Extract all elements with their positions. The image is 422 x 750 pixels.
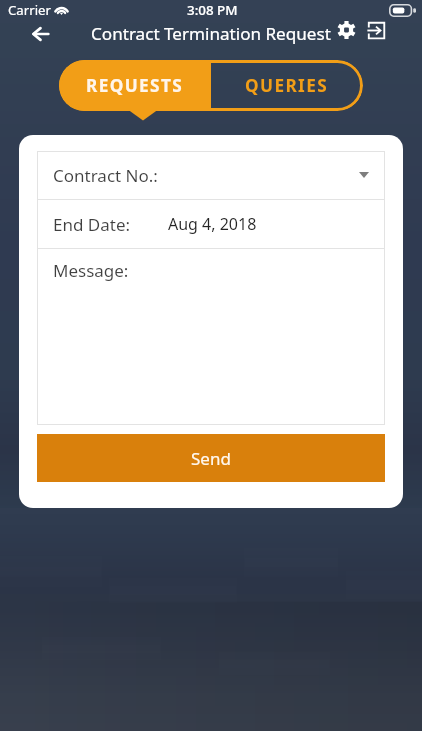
staticText: REQUESTS [86, 74, 184, 97]
staticText: Contract No.: [53, 164, 158, 187]
staticText: Carrier [8, 1, 51, 19]
button[interactable]: Back [24, 20, 56, 48]
button[interactable]: Message: [37, 249, 385, 425]
staticText: Aug 4, 2018 [168, 213, 257, 235]
staticText: QUERIES [245, 74, 329, 97]
button[interactable]: Send [37, 434, 385, 482]
button[interactable]: End Date: [37, 200, 385, 248]
button[interactable]: QUERIES [211, 60, 363, 111]
button[interactable]: Contract No.: [37, 151, 385, 199]
staticText: Send [191, 447, 231, 470]
staticText: Message: [53, 259, 129, 282]
staticText: 3:08 PM [187, 1, 238, 19]
button[interactable]: REQUESTS [59, 60, 211, 111]
staticText: End Date: [53, 213, 131, 236]
staticText: Contract Termination Request [91, 22, 331, 45]
button[interactable]: Logout [365, 16, 387, 44]
button[interactable]: Settings [335, 16, 358, 44]
